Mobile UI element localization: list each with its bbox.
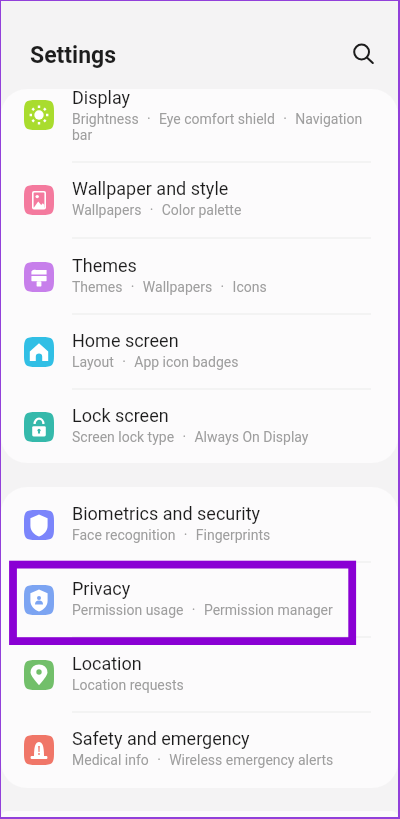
staticText: Wallpapers · Color palette bbox=[72, 202, 242, 218]
staticText: Layout · App icon badges bbox=[72, 354, 239, 370]
staticText: Location bbox=[72, 653, 142, 674]
staticText: Privacy bbox=[72, 578, 131, 599]
button[interactable]: Lock screen bbox=[1, 389, 398, 463]
staticText: Screen lock type · Always On Display bbox=[72, 429, 309, 445]
button[interactable]: Home screen bbox=[1, 314, 398, 389]
staticText: Permission usage · Permission manager bbox=[72, 602, 333, 618]
button[interactable]: Biometrics and security bbox=[1, 487, 398, 562]
staticText: Themes bbox=[72, 255, 137, 276]
button[interactable]: Search bbox=[345, 36, 377, 68]
button[interactable]: Display bbox=[1, 89, 398, 162]
staticText: Brightness · Eye comfort shield · Naviga… bbox=[72, 111, 368, 143]
staticText: Location requests bbox=[72, 677, 184, 693]
staticText: Themes · Wallpapers · Icons bbox=[72, 279, 267, 295]
staticText: Settings bbox=[30, 42, 117, 69]
button[interactable]: Location bbox=[1, 637, 398, 712]
staticText: Biometrics and security bbox=[72, 503, 261, 524]
button[interactable]: Safety and emergency bbox=[1, 712, 398, 788]
button[interactable]: Wallpaper and style bbox=[1, 162, 398, 238]
button[interactable]: Themes bbox=[1, 238, 398, 314]
staticText: Home screen bbox=[72, 330, 179, 351]
staticText: Wallpaper and style bbox=[72, 178, 229, 199]
staticText: Medical info · Wireless emergency alerts bbox=[72, 752, 334, 768]
staticText: Safety and emergency bbox=[72, 728, 250, 749]
staticText: Lock screen bbox=[72, 405, 169, 426]
staticText: Display bbox=[72, 89, 131, 108]
button[interactable]: Privacy bbox=[1, 562, 398, 637]
staticText: Face recognition · Fingerprints bbox=[72, 527, 271, 543]
